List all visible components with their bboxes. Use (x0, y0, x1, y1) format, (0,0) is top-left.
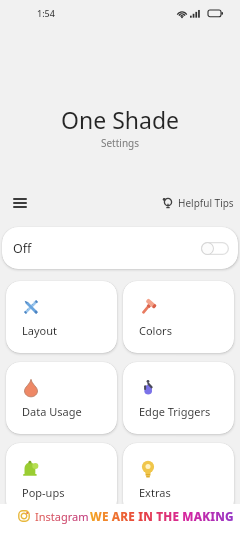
staticText: 1:54 (37, 7, 55, 19)
button[interactable]: Data Usage (6, 362, 117, 434)
staticText: Layout (22, 323, 57, 338)
staticText: Edge Triggers (139, 404, 211, 419)
staticText: Pop-ups (22, 485, 65, 500)
staticText: Off (13, 240, 32, 257)
staticText: Data Usage (22, 404, 82, 419)
button[interactable]: Instagram (0, 504, 240, 533)
button[interactable]: Off (2, 227, 238, 269)
button[interactable]: Pop-ups (6, 443, 117, 515)
staticText: Extras (139, 485, 171, 500)
staticText: One Shade (0, 104, 240, 135)
staticText: Helpful Tips (178, 196, 234, 210)
staticText: Colors (139, 323, 172, 338)
button[interactable]: Menu (7, 190, 33, 216)
staticText: Settings (0, 136, 240, 150)
button[interactable]: Edge Triggers (123, 362, 234, 434)
staticText: WE ARE IN THE MAKING (90, 508, 234, 524)
button[interactable]: Colors (123, 281, 234, 353)
button[interactable]: Extras (123, 443, 234, 515)
staticText: Instagram (35, 509, 89, 524)
button[interactable]: Toggle (201, 242, 229, 255)
button[interactable]: Helpful Tips (158, 193, 238, 213)
button[interactable]: Layout (6, 281, 117, 353)
